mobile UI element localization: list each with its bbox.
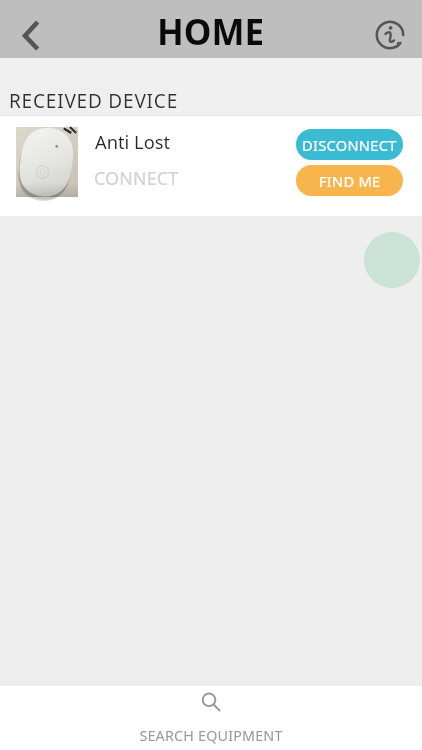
staticText: FIND ME [319, 171, 381, 191]
button[interactable]: Back [11, 6, 55, 50]
button[interactable]: Add device [364, 232, 420, 288]
staticText: Anti Lost [95, 129, 171, 154]
button[interactable]: DISCONNECT [296, 129, 403, 160]
button[interactable]: Info [368, 13, 412, 57]
staticText: SEARCH EQUIPMENT [139, 726, 283, 745]
staticText: RECEIVED DEVICE [9, 88, 179, 114]
staticText: HOME [157, 8, 265, 56]
button[interactable]: Anti Lost [0, 115, 422, 216]
button[interactable]: FIND ME [296, 165, 403, 196]
staticText: CONNECT [94, 166, 179, 190]
staticText: DISCONNECT [302, 135, 397, 155]
button[interactable]: SEARCH EQUIPMENT [0, 686, 422, 750]
